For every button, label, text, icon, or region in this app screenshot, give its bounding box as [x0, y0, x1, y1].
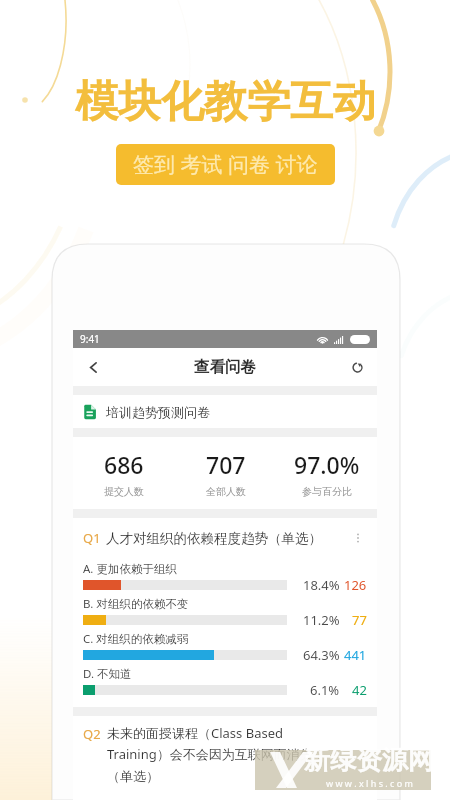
button[interactable]: Back — [77, 351, 109, 383]
staticText: D. 不知道 — [83, 666, 132, 680]
button[interactable]: Refresh — [341, 351, 373, 383]
staticText: 441 — [344, 646, 367, 664]
staticText: 707 — [206, 449, 246, 480]
staticText: 签到 考试 问卷 讨论 — [133, 150, 318, 179]
staticText: 全部人数 — [206, 485, 246, 498]
staticText: 97.0% — [294, 449, 360, 480]
staticText: 提交人数 — [104, 485, 144, 498]
staticText: 11.2% — [303, 611, 340, 629]
staticText: w w w . x l h s . c o m — [326, 777, 413, 789]
staticText: 686 — [104, 449, 144, 480]
staticText: Q1 — [83, 529, 101, 547]
button[interactable]: More options — [349, 529, 367, 547]
staticText: 新绿资源网 — [304, 744, 434, 777]
staticText: 6.1% — [310, 681, 340, 699]
staticText: 18.4% — [303, 576, 340, 594]
staticText: 模块化教学互动 — [75, 75, 376, 129]
staticText: 9:41 — [80, 332, 100, 346]
staticText: 参与百分比 — [302, 485, 352, 498]
staticText: C. 对组织的依赖减弱 — [83, 631, 189, 645]
staticText: 42 — [352, 681, 367, 699]
staticText: 77 — [352, 611, 367, 629]
staticText: Q2 — [83, 725, 101, 743]
staticText: 未来的面授课程（Class Based Training）会不会因为互联网而消失… — [107, 724, 337, 785]
staticText: B. 对组织的依赖不变 — [83, 596, 189, 610]
staticText: 人才对组织的依赖程度趋势（单选） — [106, 530, 322, 547]
staticText: 126 — [344, 576, 367, 594]
staticText: A. 更加依赖于组织 — [83, 561, 177, 575]
staticText: 查看问卷 — [194, 357, 256, 377]
button[interactable]: 签到 考试 问卷 讨论 — [116, 144, 335, 185]
staticText: 培训趋势预测问卷 — [106, 404, 210, 420]
staticText: 64.3% — [303, 646, 340, 664]
